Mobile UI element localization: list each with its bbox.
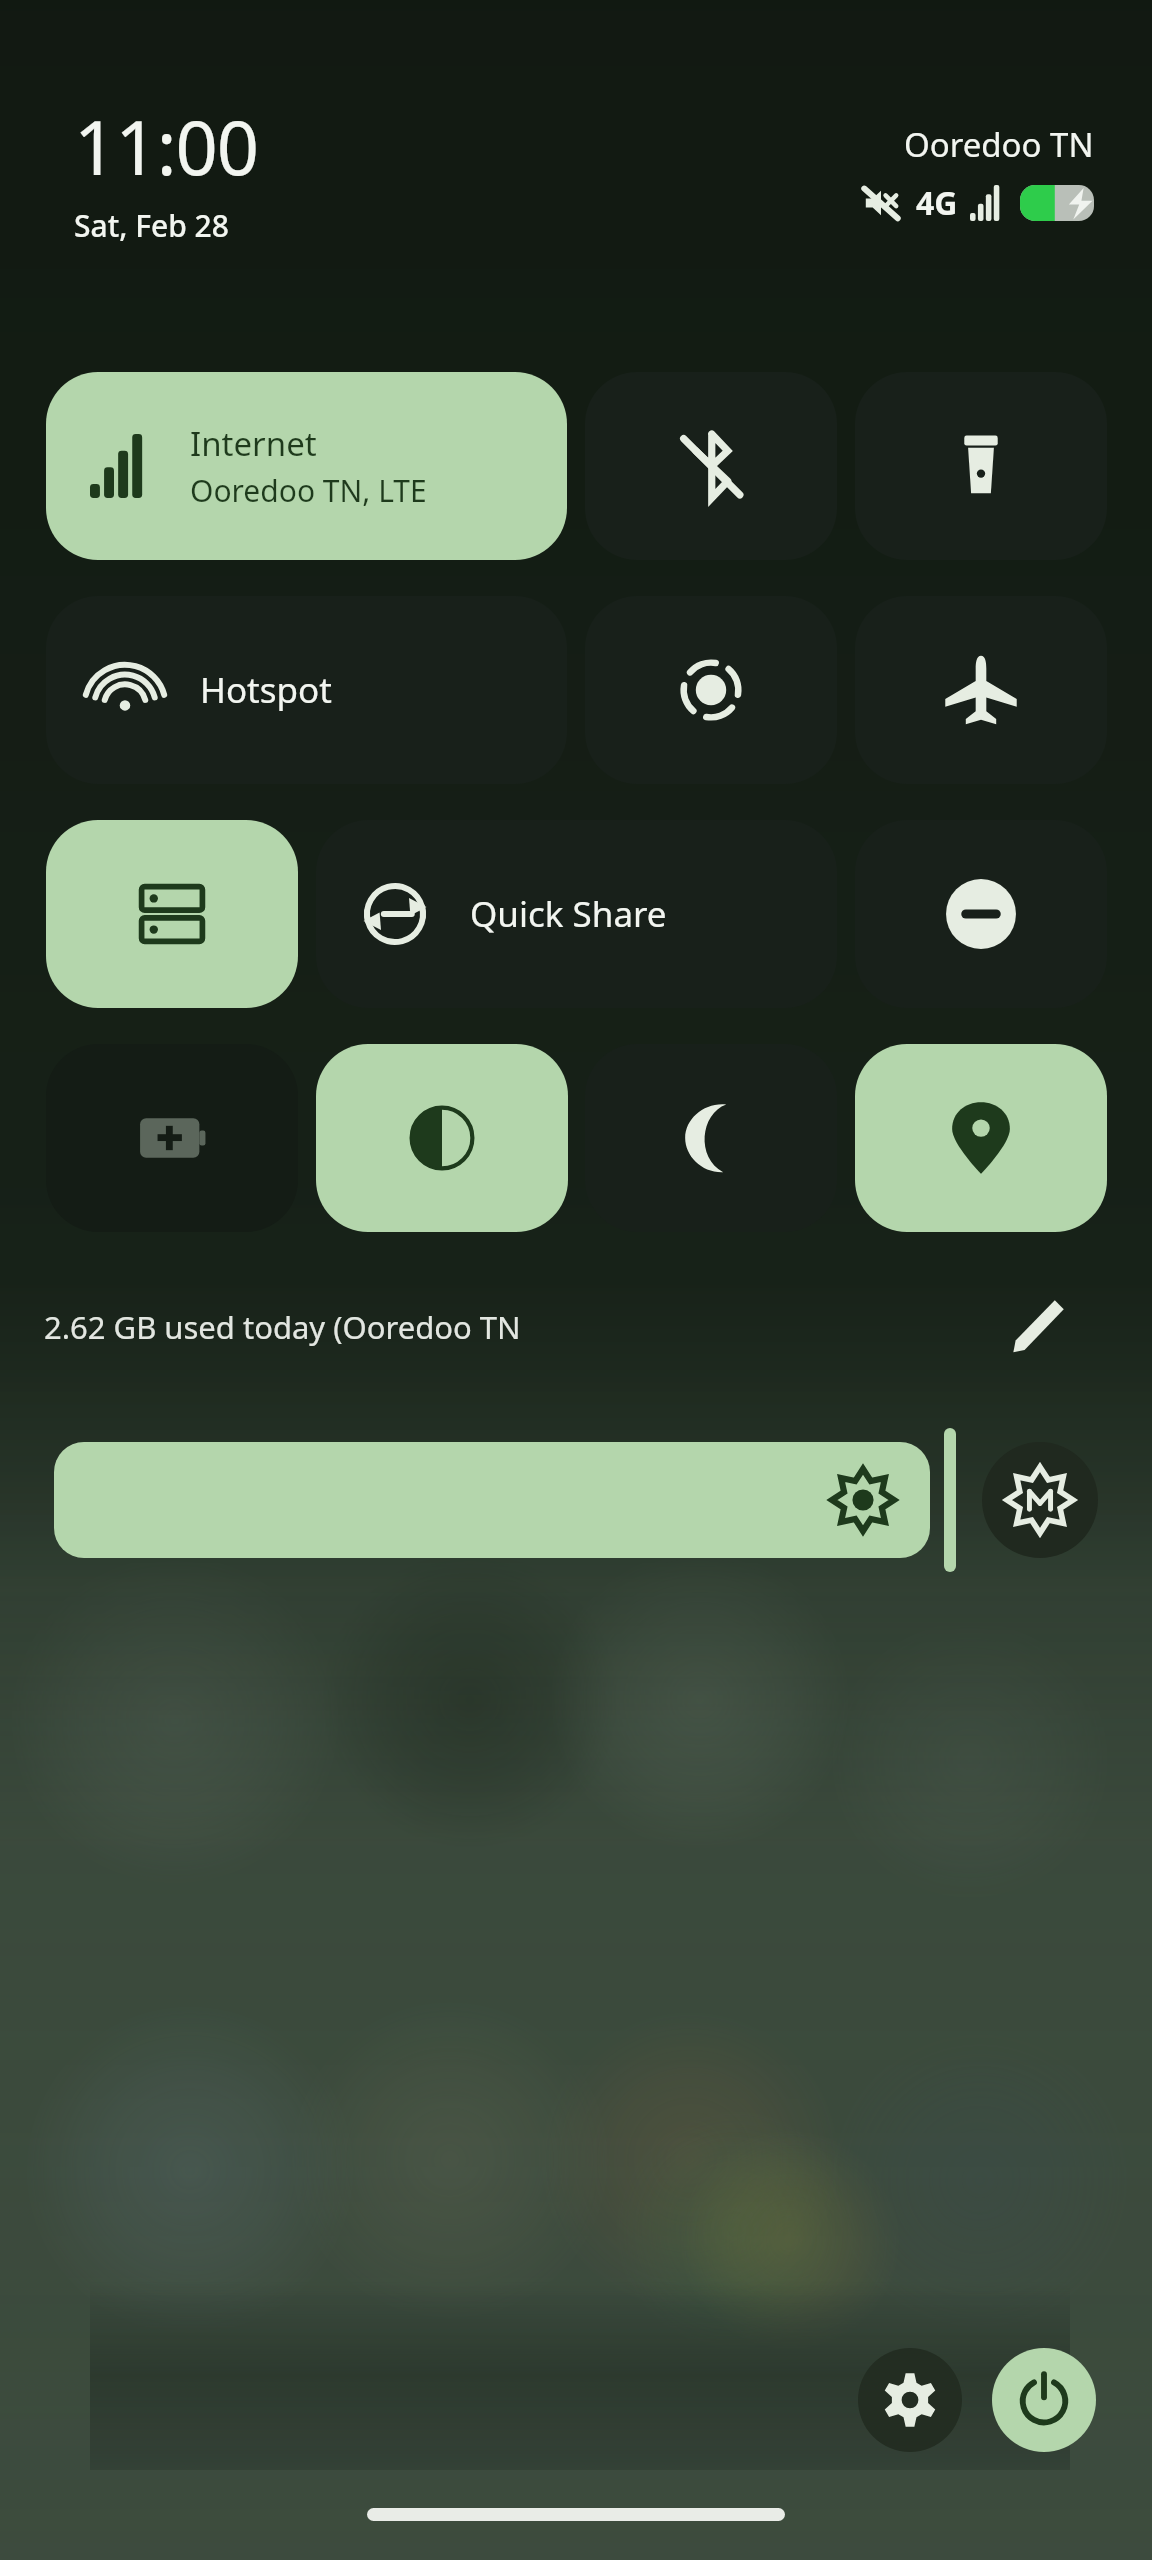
staticText: Sat, Feb 28 <box>74 205 229 246</box>
button[interactable]: Bluetooth off <box>585 372 837 560</box>
button[interactable]: Dual SIM <box>46 820 298 1008</box>
button[interactable]: Internet <box>46 372 567 560</box>
button[interactable]: Auto brightness <box>982 1442 1098 1558</box>
staticText: Ooredoo TN, LTE <box>190 470 427 511</box>
button[interactable]: Flashlight <box>855 372 1107 560</box>
button[interactable]: Location <box>855 1044 1107 1232</box>
button[interactable]: Screen record <box>585 596 837 784</box>
button[interactable]: Battery saver <box>46 1044 298 1232</box>
button[interactable]: Quick Share <box>316 820 837 1008</box>
button[interactable]: Color contrast <box>316 1044 568 1232</box>
button[interactable]: Night light <box>585 1044 837 1232</box>
staticText: Internet <box>190 421 317 466</box>
button[interactable]: Do not disturb <box>855 820 1107 1008</box>
button[interactable]: Power <box>992 2348 1096 2452</box>
staticText: Ooredoo TN <box>904 122 1094 167</box>
staticText: Hotspot <box>200 666 332 714</box>
staticText: 11:00 <box>74 96 259 197</box>
button[interactable]: Brightness <box>54 1442 930 1558</box>
staticText: Quick Share <box>470 890 667 938</box>
button[interactable]: Settings <box>858 2348 962 2452</box>
staticText: 4G <box>916 181 958 225</box>
button[interactable]: Airplane mode <box>855 596 1107 784</box>
staticText: 2.62 GB used today (Ooredoo TN <box>44 1306 521 1348</box>
button[interactable]: Edit tiles <box>1000 1288 1076 1364</box>
button[interactable]: Hotspot <box>46 596 567 784</box>
